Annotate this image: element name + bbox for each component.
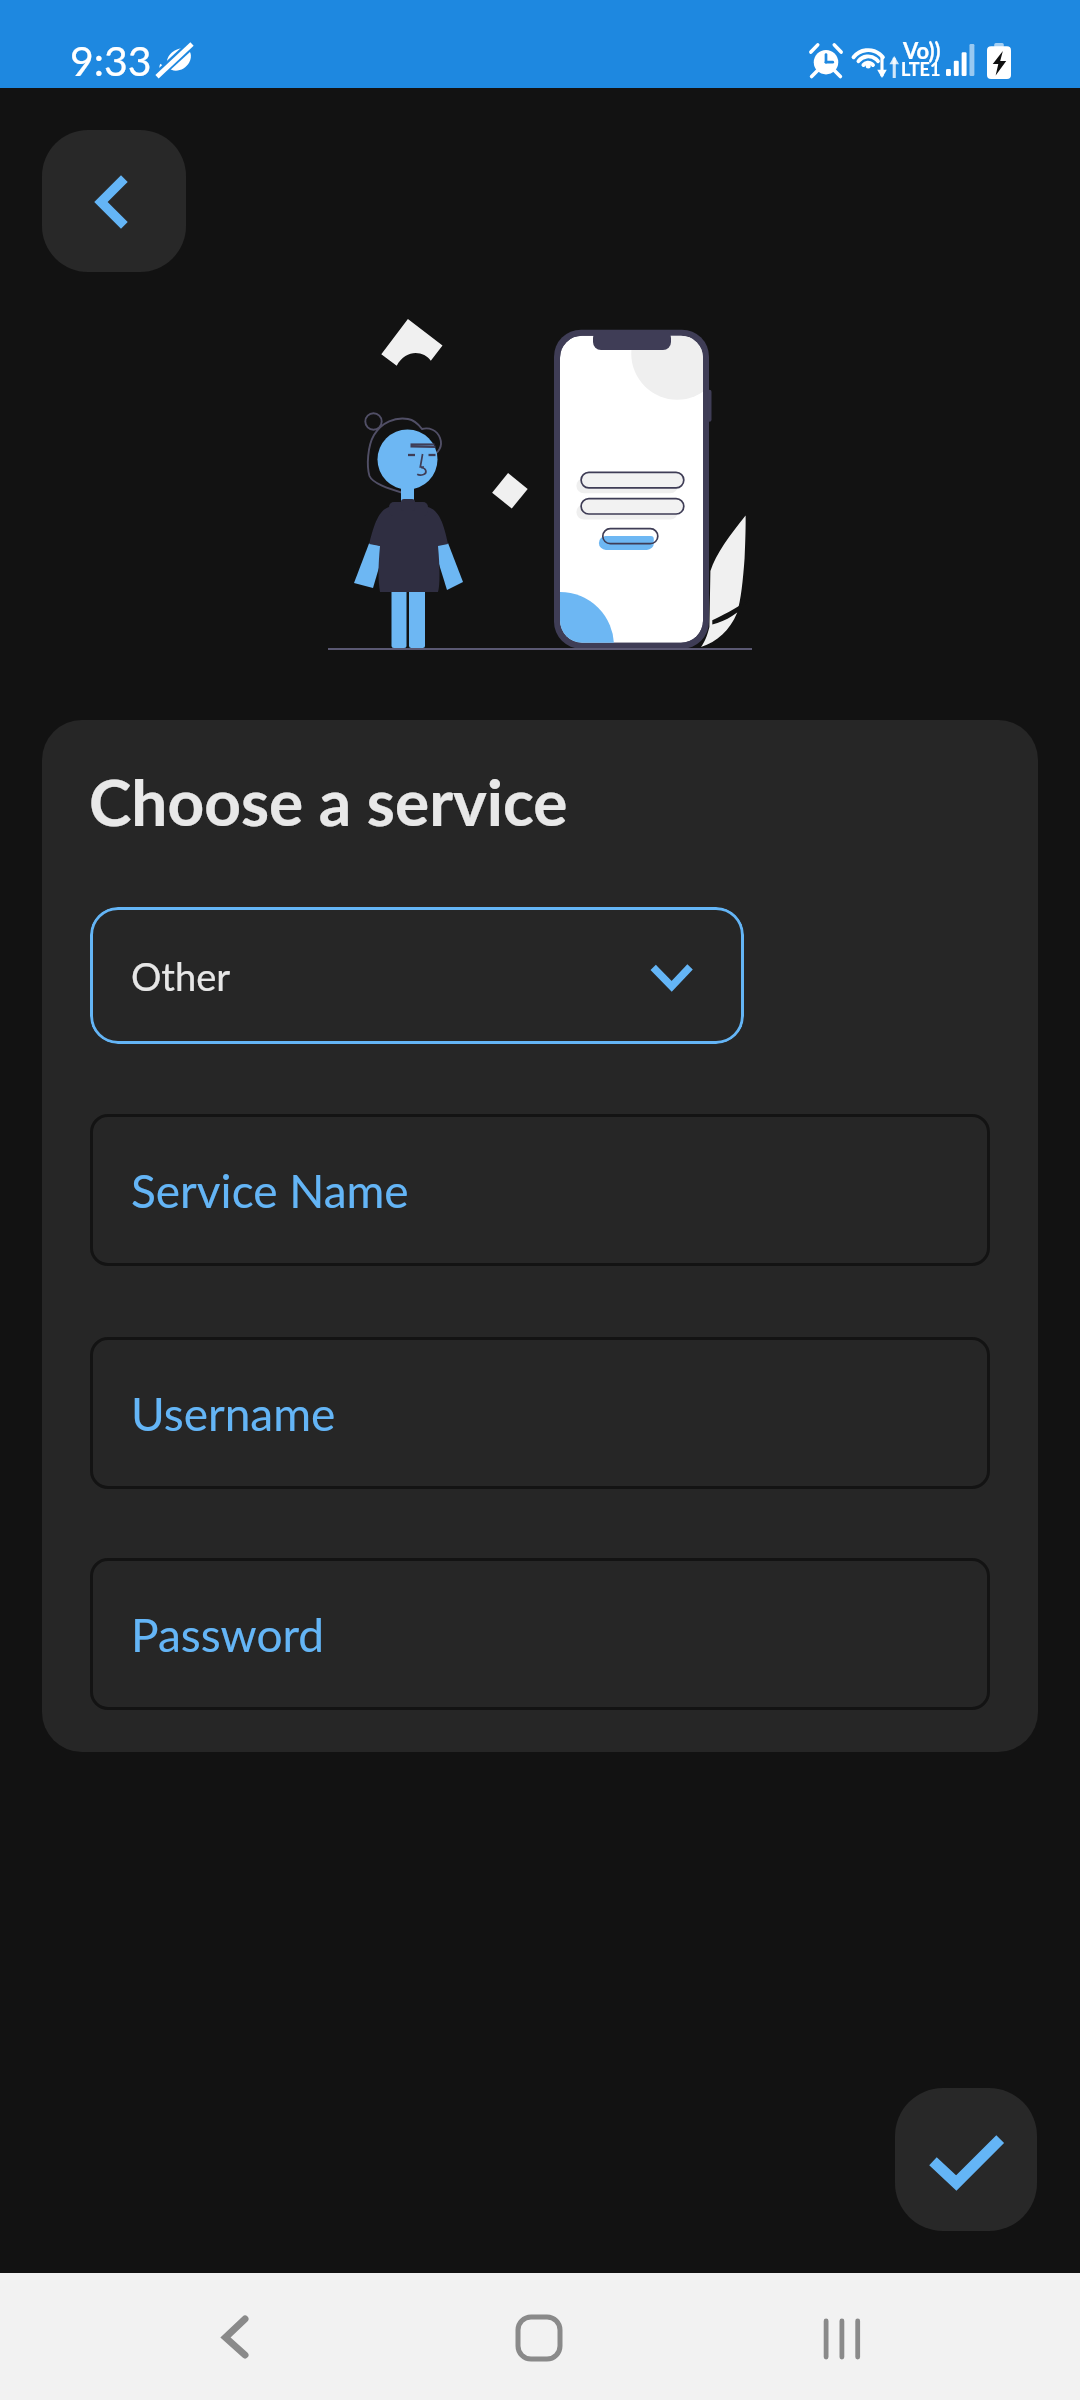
button[interactable]: Other <box>90 907 744 1044</box>
staticText: 9:33 <box>70 36 152 85</box>
staticText: Password <box>131 1607 325 1662</box>
staticText: Choose a service <box>89 763 568 840</box>
staticText: Service Name <box>131 1163 409 1218</box>
button[interactable]: Service Name <box>90 1114 990 1266</box>
button[interactable]: Back <box>176 2277 296 2397</box>
button[interactable]: Back <box>42 130 186 272</box>
staticText: Vo)) <box>903 37 941 63</box>
button[interactable]: Username <box>90 1337 990 1489</box>
button[interactable]: Confirm <box>895 2088 1037 2231</box>
staticText: Other <box>131 953 231 999</box>
staticText: Username <box>131 1386 336 1441</box>
button[interactable]: Password <box>90 1558 990 1710</box>
staticText: LTE1 <box>901 58 941 80</box>
button[interactable]: Recent apps <box>782 2277 902 2397</box>
button[interactable]: Home <box>479 2277 599 2397</box>
